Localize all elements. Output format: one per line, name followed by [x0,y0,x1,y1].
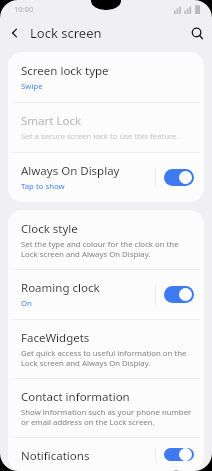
staticText: Get quick access to useful information o… [21,348,194,368]
button[interactable]: Clock style [8,210,204,269]
staticText: Always On Display [21,163,120,179]
staticText: Tap to show [21,181,65,192]
staticText: Show information such as your phone numb… [21,407,194,427]
button[interactable]: Toggle Always On Display [164,169,194,186]
button[interactable]: Notifications [8,438,204,471]
button[interactable]: Screen lock type [8,52,204,102]
button[interactable]: Roaming clock [8,270,204,319]
staticText: Roaming clock [21,280,100,296]
button[interactable]: Back [0,18,30,48]
staticText: 10:00 [14,4,34,14]
button[interactable]: Toggle Roaming clock [164,286,194,303]
staticText: On [21,298,32,309]
button[interactable]: Smart Lock [8,103,204,152]
staticText: Clock style [21,221,78,237]
button[interactable]: Always On Display [8,153,204,202]
staticText: Screen lock type [21,63,109,79]
button[interactable]: Toggle Notifications [164,448,194,461]
staticText: Set a secure screen lock to use this fea… [21,131,179,142]
button[interactable]: Search [182,18,212,48]
staticText: Lock screen [30,24,182,42]
staticText: Notifications [21,448,90,461]
staticText: Swipe [21,81,43,92]
staticText: Contact information [21,389,130,405]
staticText: Set the type and colour for the clock on… [21,239,194,259]
staticText: Smart Lock [21,113,82,129]
staticText: FaceWidgets [21,330,90,346]
button[interactable]: FaceWidgets [8,320,204,378]
button[interactable]: Contact information [8,379,204,437]
